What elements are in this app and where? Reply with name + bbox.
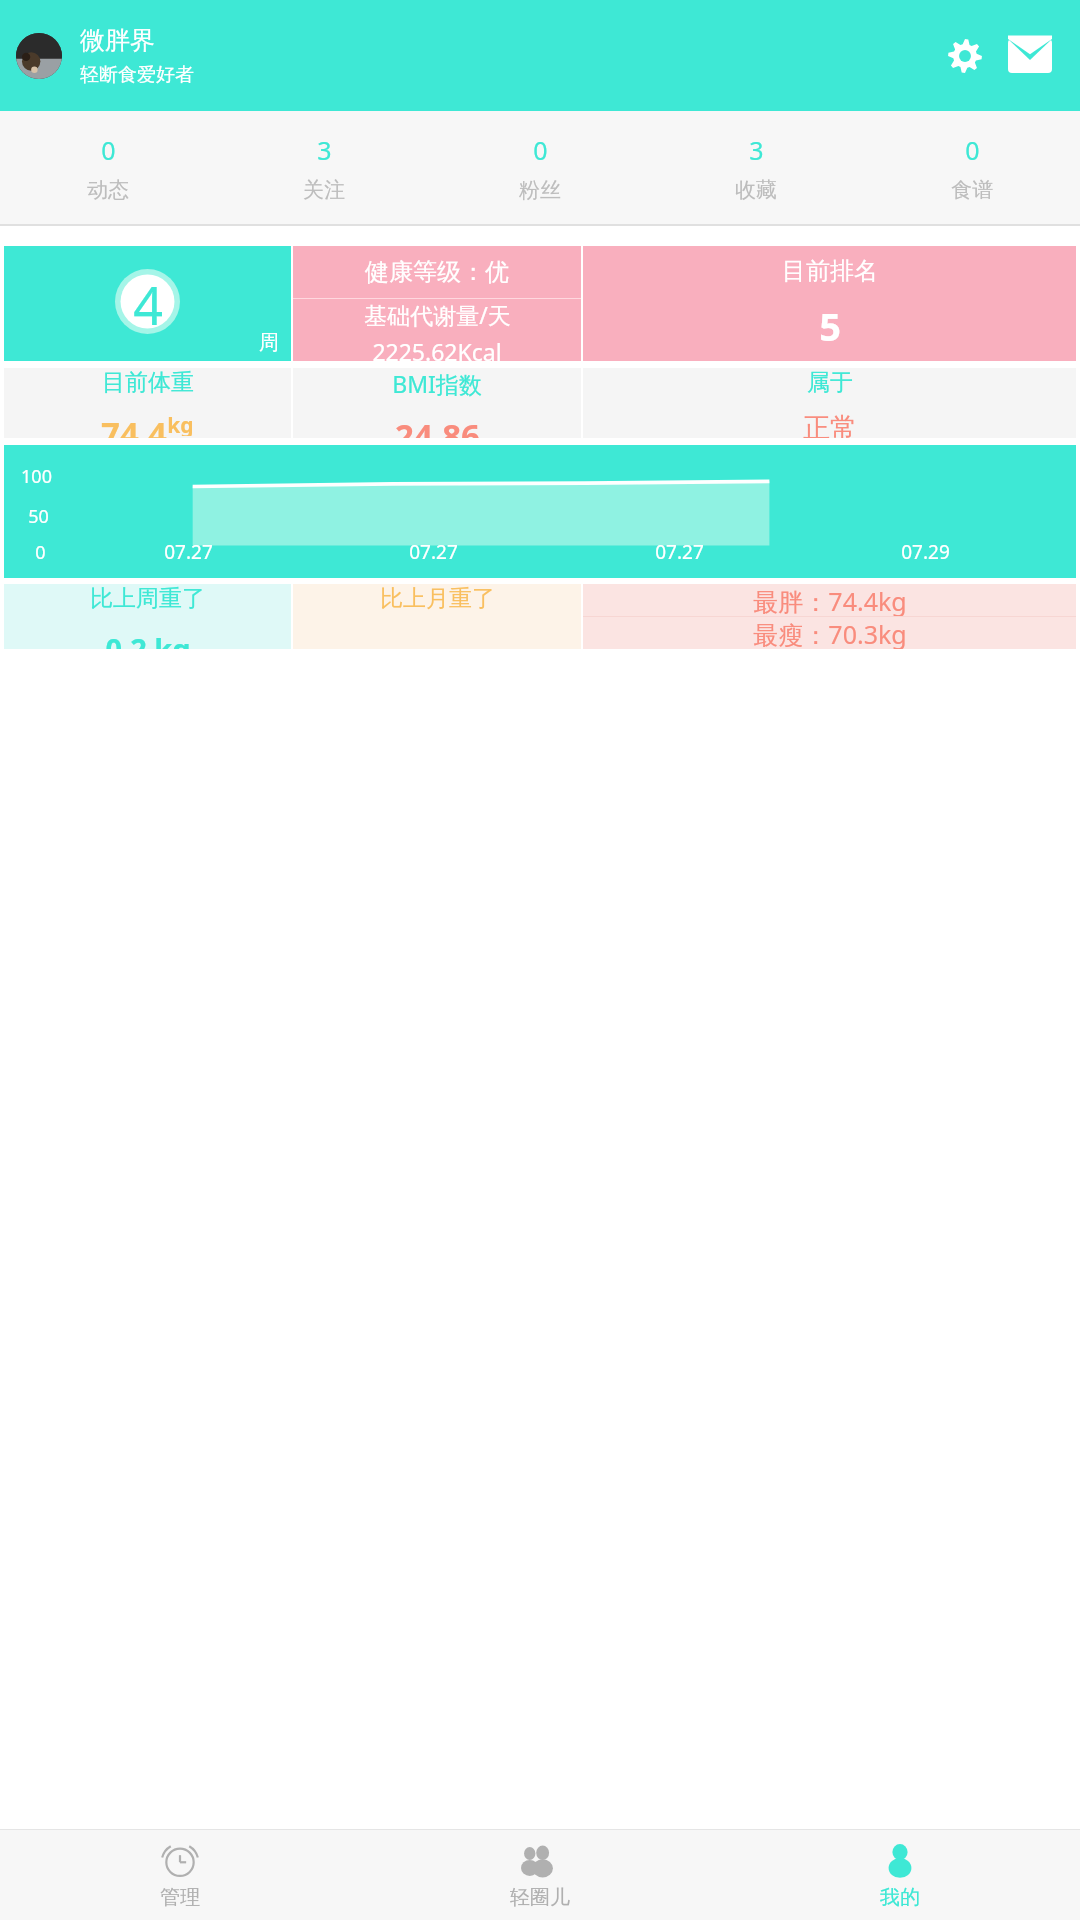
button[interactable]: Settings — [936, 27, 994, 85]
button[interactable]: BMI指数 — [293, 368, 581, 438]
staticText: 07.29 — [901, 539, 950, 565]
button[interactable]: 比上周重了 — [4, 584, 291, 649]
staticText: 目前排名 — [782, 256, 878, 286]
button[interactable]: Messages — [1001, 27, 1059, 85]
button[interactable]: 比上月重了 — [293, 584, 581, 649]
staticText: 动态 — [87, 177, 129, 203]
staticText: 50 — [28, 504, 49, 529]
staticText: 收藏 — [735, 177, 777, 203]
staticText: 属于 — [807, 368, 853, 397]
button[interactable]: Profile photo — [16, 33, 62, 79]
staticText: 07.27 — [655, 539, 704, 565]
staticText: 粉丝 — [519, 177, 561, 203]
staticText: kg — [167, 411, 194, 436]
button[interactable]: 健康等级：优 — [293, 246, 581, 361]
staticText: 24.86 — [395, 413, 480, 438]
staticText: 食谱 — [951, 177, 993, 203]
button[interactable]: 目前排名 — [583, 246, 1076, 361]
button[interactable]: 3 — [648, 111, 864, 224]
staticText: 74.4 — [101, 411, 167, 438]
staticText: 健康等级：优 — [365, 257, 509, 287]
staticText: 07.27 — [409, 539, 458, 565]
staticText: 3 — [317, 133, 332, 167]
staticText: 微胖界 — [80, 25, 155, 56]
button[interactable]: 最胖：74.4kg — [583, 584, 1076, 649]
staticText: 07.27 — [164, 539, 213, 565]
staticText: 比上月重了 — [380, 584, 495, 613]
staticText: 0.2 kg — [105, 629, 191, 649]
button[interactable]: 属于 — [583, 368, 1076, 438]
button[interactable]: 3 — [216, 111, 432, 224]
button[interactable]: 100 — [4, 445, 1076, 578]
staticText: 轻断食爱好者 — [80, 63, 194, 87]
button[interactable]: 管理 — [0, 1830, 360, 1920]
staticText: 管理 — [160, 1885, 200, 1910]
staticText: 0 — [965, 133, 980, 167]
button[interactable]: 0 — [0, 111, 216, 224]
staticText: 2225.62Kcal — [372, 336, 502, 361]
staticText: 0 — [533, 133, 548, 167]
staticText: 0 — [35, 540, 46, 565]
button[interactable]: 0 — [432, 111, 648, 224]
button[interactable]: 4 — [4, 246, 291, 361]
staticText: 周 — [259, 330, 279, 355]
button[interactable]: 轻圈儿 — [360, 1830, 720, 1920]
staticText: 轻圈儿 — [510, 1885, 570, 1910]
button[interactable]: 我的 — [720, 1830, 1080, 1920]
staticText: 比上周重了 — [90, 584, 205, 613]
staticText: 4 — [133, 269, 163, 334]
staticText: 最瘦：70.3kg — [753, 617, 907, 649]
button[interactable]: 0 — [864, 111, 1080, 224]
staticText: 5 — [819, 300, 841, 352]
button[interactable]: 目前体重 — [4, 368, 291, 438]
staticText: 关注 — [303, 177, 345, 203]
staticText: 正常 — [803, 411, 857, 438]
staticText: 最胖：74.4kg — [753, 584, 907, 616]
staticText: 目前体重 — [102, 368, 194, 397]
staticText: BMI指数 — [392, 368, 482, 399]
staticText: 基础代谢量/天 — [364, 299, 511, 330]
staticText: 我的 — [880, 1885, 920, 1910]
staticText: 0 — [101, 133, 116, 167]
staticText: 3 — [749, 133, 764, 167]
staticText: 100 — [21, 464, 52, 489]
